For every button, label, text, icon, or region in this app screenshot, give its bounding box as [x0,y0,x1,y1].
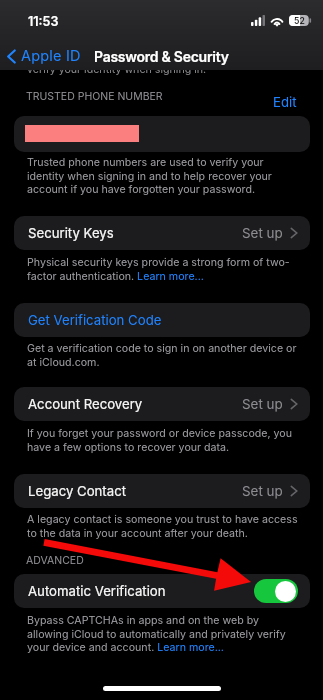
staticText: Account Recovery [28,396,143,412]
button[interactable]: Apple ID [0,45,87,67]
staticText: A legacy contact is someone you trust to… [27,513,300,539]
button[interactable]: Account Recovery [14,387,310,421]
button[interactable]: Automatic Verification, on [254,579,298,603]
staticText: 11:53 [28,14,59,29]
staticText: Bypass CAPTCHAs in apps and on the web b… [27,614,300,653]
staticText: verify your identity when signing in. [27,63,207,76]
button[interactable]: Security Keys [14,216,310,250]
staticText: 52 [294,16,305,26]
staticText: Security Keys [28,225,114,241]
staticText: Physical security keys provide a strong … [27,256,300,282]
staticText: Edit [273,94,297,110]
button[interactable]: Edit [267,92,303,112]
staticText: Set up [242,225,283,241]
staticText: Password & Security [94,48,229,65]
staticText: If you forget your password or device pa… [27,427,300,453]
staticText: Set up [242,396,283,412]
button[interactable]: Get Verification Code [14,303,310,337]
staticText: Legacy Contact [28,483,126,499]
staticText: ADVANCED [26,554,84,567]
staticText: Set up [242,483,283,499]
staticText: Automatic Verification [28,583,166,599]
staticText: Get a verification code to sign in on an… [27,342,300,368]
staticText: Trusted phone numbers are used to verify… [27,156,300,195]
staticText: TRUSTED PHONE NUMBER [26,90,163,103]
staticText: Get Verification Code [28,312,162,328]
button[interactable]: Automatic Verification [14,574,310,608]
button[interactable] [14,116,310,152]
button[interactable]: Legacy Contact [14,474,310,508]
staticText: Apple ID [21,47,81,65]
